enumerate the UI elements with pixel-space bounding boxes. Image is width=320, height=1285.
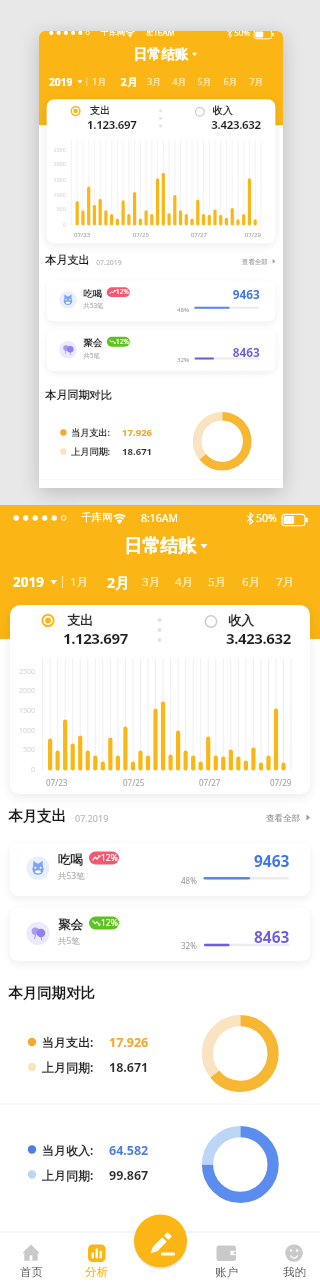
button[interactable] [192, 102, 246, 121]
button[interactable] [10, 908, 310, 961]
button[interactable] [102, 570, 132, 594]
staticText: 1500 [53, 176, 66, 184]
button[interactable] [132, 1212, 188, 1268]
staticText: 50% [234, 31, 250, 38]
staticText: 聚会 [58, 917, 83, 933]
staticText: 4月 [172, 76, 187, 88]
button[interactable] [270, 1238, 318, 1282]
staticText: 8:16AM [146, 31, 175, 38]
staticText: 当月支出: [71, 426, 111, 439]
staticText: 1.123.697 [63, 628, 128, 648]
staticText: 本月同期对比 [45, 388, 111, 402]
button[interactable] [260, 807, 312, 827]
staticText: 9463 [254, 850, 290, 871]
staticText: 12% [101, 852, 118, 864]
button[interactable] [47, 73, 86, 91]
staticText: 8463 [233, 344, 260, 360]
staticText: 本月支出 [45, 253, 89, 267]
button[interactable] [248, 73, 268, 91]
button[interactable] [47, 99, 275, 243]
button[interactable] [237, 253, 277, 269]
staticText: 07/25 [123, 777, 145, 788]
staticText: 1月 [92, 76, 107, 88]
staticText: 上月同期: [42, 1167, 94, 1183]
staticText: 2019 [49, 75, 72, 88]
button[interactable] [206, 570, 232, 594]
button[interactable] [47, 281, 275, 321]
staticText: 07/25 [133, 230, 150, 239]
button[interactable] [171, 73, 191, 91]
staticText: 支出 [67, 612, 93, 628]
button[interactable] [120, 534, 212, 558]
staticText: 共53笔 [58, 870, 85, 882]
staticText: 2500 [53, 146, 66, 154]
staticText: 查看全部 [242, 258, 268, 266]
staticText: 聚会 [83, 337, 102, 349]
staticText: 日常结账 [124, 535, 196, 558]
button[interactable] [38, 609, 108, 633]
staticText: 07/23 [46, 777, 68, 788]
button[interactable] [68, 102, 121, 121]
button[interactable] [140, 570, 166, 594]
staticText: 1000 [19, 726, 36, 736]
staticText: 0 [63, 221, 66, 229]
staticText: 32% [181, 940, 197, 951]
staticText: 共5笔 [58, 935, 80, 947]
staticText: 8:16AM [141, 511, 179, 525]
staticText: 5月 [208, 574, 227, 590]
staticText: 千库网 [81, 511, 113, 524]
staticText: 7月 [249, 76, 264, 88]
button[interactable] [10, 605, 310, 794]
staticText: 3.423.632 [211, 117, 261, 132]
button[interactable] [117, 73, 140, 91]
staticText: 07.2019 [75, 812, 109, 824]
staticText: 本月同期对比 [8, 984, 95, 1002]
button[interactable] [8, 1238, 56, 1282]
staticText: 共5笔 [83, 351, 100, 360]
staticText: 吃喝 [58, 852, 83, 868]
staticText: 账户 [215, 1265, 238, 1279]
staticText: 4月 [175, 574, 194, 590]
staticText: 64.582 [109, 1142, 149, 1159]
staticText: 我的 [283, 1265, 306, 1279]
staticText: 50% [256, 511, 277, 525]
button[interactable] [68, 570, 94, 594]
button[interactable] [196, 73, 216, 91]
staticText: 当月支出: [42, 1034, 94, 1050]
staticText: 2500 [19, 667, 36, 677]
button[interactable] [130, 45, 201, 63]
button[interactable] [240, 570, 266, 594]
staticText: 收入 [213, 105, 233, 117]
staticText: 18.671 [109, 1059, 149, 1076]
button[interactable] [201, 609, 271, 633]
staticText: 6月 [223, 76, 238, 88]
button[interactable] [91, 73, 111, 91]
staticText: 48% [177, 305, 189, 313]
staticText: 2000 [19, 686, 36, 696]
staticText: 17.926 [109, 1034, 149, 1051]
staticText: 17.926 [122, 426, 153, 439]
button[interactable] [173, 570, 199, 594]
staticText: 18.671 [122, 445, 153, 458]
staticText: 支出 [90, 105, 110, 117]
staticText: 12% [116, 337, 129, 346]
button[interactable] [73, 1238, 121, 1282]
button[interactable] [202, 1238, 250, 1282]
staticText: 07/23 [74, 230, 91, 239]
staticText: 查看全部 [266, 813, 300, 824]
staticText: 12% [101, 917, 118, 929]
button[interactable] [146, 73, 166, 91]
button[interactable] [274, 570, 300, 594]
staticText: 本月支出 [8, 807, 66, 825]
button[interactable] [10, 570, 62, 594]
button[interactable] [222, 73, 242, 91]
staticText: 6月 [242, 574, 261, 590]
staticText: 千库网 [101, 31, 125, 37]
staticText: 首页 [20, 1265, 43, 1279]
staticText: 8463 [254, 926, 290, 947]
staticText: 9463 [233, 286, 260, 302]
staticText: 12% [116, 288, 129, 297]
button[interactable] [47, 330, 275, 371]
button[interactable] [10, 843, 310, 896]
staticText: 3.423.632 [226, 628, 291, 648]
